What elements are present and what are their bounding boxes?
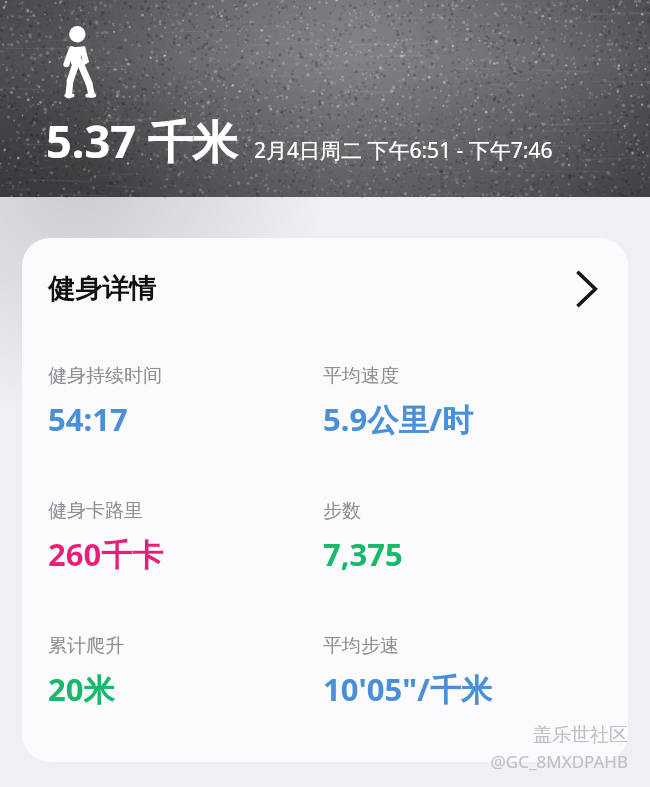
staticText: 2月4日周二 下午6:51 - 下午7:46 xyxy=(254,136,553,165)
button[interactable]: 健身持续时间 xyxy=(48,340,323,475)
staticText: 健身卡路里 xyxy=(48,499,143,523)
staticText: 健身持续时间 xyxy=(48,364,162,388)
staticText: 260千卡 xyxy=(48,533,164,575)
button[interactable]: 步数 xyxy=(323,475,612,610)
staticText: 步数 xyxy=(323,499,361,523)
staticText: 健身详情 xyxy=(48,272,156,306)
staticText: 盖乐世社区 xyxy=(533,723,628,747)
button[interactable]: 健身详情 xyxy=(22,238,628,340)
staticText: 20米 xyxy=(48,668,115,710)
staticText: 10'05"/千米 xyxy=(323,668,492,710)
staticText: @GC_8MXDPAHB xyxy=(490,750,628,773)
staticText: 累计爬升 xyxy=(48,634,124,658)
button[interactable]: 平均步速 xyxy=(323,610,612,745)
staticText: 7,375 xyxy=(323,533,403,575)
staticText: 54:17 xyxy=(48,398,128,440)
button[interactable]: 健身卡路里 xyxy=(48,475,323,610)
staticText: 5.9公里/时 xyxy=(323,398,474,440)
button[interactable]: 累计爬升 xyxy=(48,610,323,745)
staticText: 5.37 千米 xyxy=(46,110,238,171)
button[interactable]: 平均速度 xyxy=(323,340,612,475)
staticText: 平均速度 xyxy=(323,364,399,388)
other: Walking workout xyxy=(58,26,100,98)
staticText: 平均步速 xyxy=(323,634,399,658)
